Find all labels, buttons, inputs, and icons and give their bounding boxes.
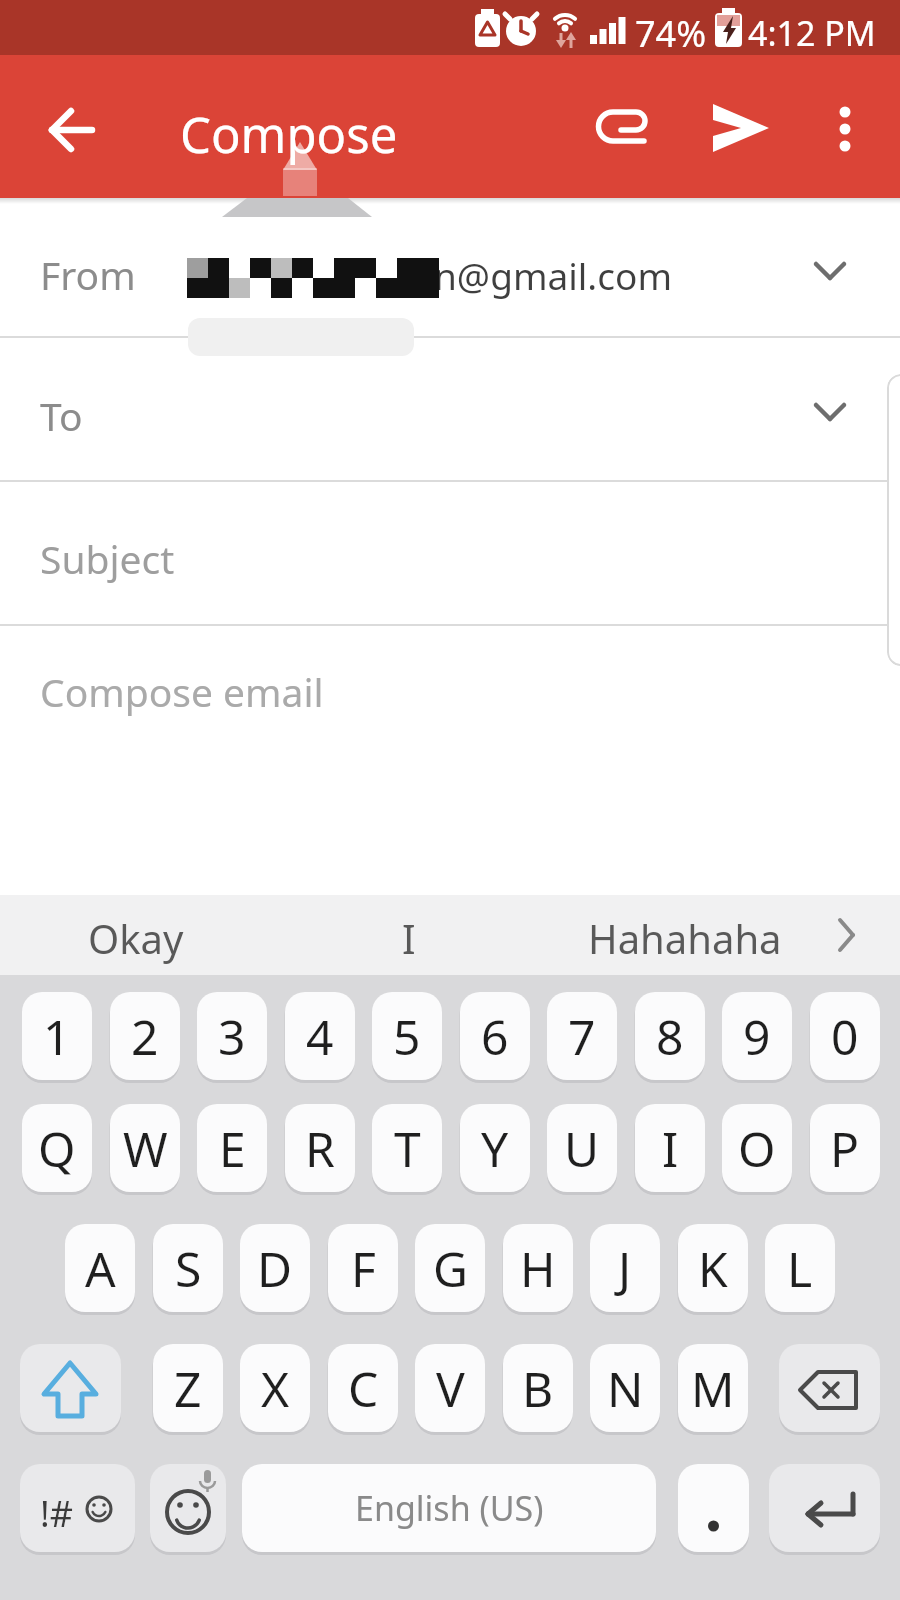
staticText: To [40,389,83,442]
button[interactable]: G [415,1224,485,1312]
button[interactable]: 3 [197,992,267,1080]
staticText: 1 [43,1004,71,1069]
button[interactable] [30,88,114,172]
staticText: C [348,1356,379,1421]
button[interactable]: T [372,1104,442,1192]
staticText: 8 [656,1004,684,1069]
button[interactable]: Y [460,1104,530,1192]
staticText: 4 [306,1004,334,1069]
button[interactable]: E [197,1104,267,1192]
button[interactable]: V [415,1344,485,1432]
button[interactable]: 6 [460,992,530,1080]
button[interactable] [678,1464,749,1552]
staticText: 74% [635,9,707,58]
staticText: J [618,1236,632,1301]
button[interactable] [150,1464,226,1552]
staticText: E [219,1116,246,1181]
button[interactable]: B [503,1344,573,1432]
button[interactable]: R [285,1104,355,1192]
staticText: 3 [218,1004,246,1069]
staticText: 6 [481,1004,509,1069]
button[interactable]: K [678,1224,748,1312]
staticText: 9 [743,1004,771,1069]
staticText: Y [481,1116,509,1181]
button[interactable] [330,895,530,975]
staticText: U [564,1116,600,1181]
button[interactable]: C [328,1344,398,1432]
button[interactable]: 4 [285,992,355,1080]
staticText: 7 [568,1004,596,1069]
staticText: 0 [831,1004,859,1069]
staticText: Okay [88,911,184,965]
staticText: 4:12 PM [748,10,876,56]
staticText: M [691,1356,735,1421]
button[interactable] [0,626,900,894]
staticText: S [175,1236,202,1301]
button[interactable] [0,482,900,625]
button[interactable]: D [240,1224,310,1312]
staticText: English (US) [355,1485,544,1531]
button[interactable]: S [153,1224,223,1312]
staticText: H [520,1236,556,1301]
button[interactable] [779,1344,880,1432]
staticText: B [522,1356,554,1421]
button[interactable] [560,895,810,975]
button[interactable] [820,895,890,975]
staticText: G [433,1236,468,1301]
button[interactable]: L [765,1224,835,1312]
staticText: F [351,1236,376,1301]
button[interactable]: 2 [110,992,180,1080]
button[interactable]: 5 [372,992,442,1080]
staticText: D [257,1236,293,1301]
button[interactable]: M [678,1344,748,1432]
button[interactable] [700,88,780,172]
button[interactable]: J [590,1224,660,1312]
button[interactable]: H [503,1224,573,1312]
button[interactable]: N [590,1344,660,1432]
button[interactable]: X [240,1344,310,1432]
button[interactable]: 9 [722,992,792,1080]
button[interactable] [580,88,660,172]
staticText: Z [174,1356,202,1421]
button[interactable] [20,1464,135,1552]
button[interactable] [769,1464,880,1552]
staticText: K [698,1236,728,1301]
button[interactable]: 1 [22,992,92,1080]
button[interactable]: Z [153,1344,223,1432]
staticText: Compose [180,101,398,168]
button[interactable]: 0 [810,992,880,1080]
staticText: 2 [131,1004,159,1069]
button[interactable]: W [110,1104,180,1192]
staticText: T [394,1116,421,1181]
button[interactable]: P [810,1104,880,1192]
staticText: I [662,1116,679,1181]
button[interactable] [20,895,280,975]
staticText: Q [38,1116,76,1181]
staticText: I [402,911,416,965]
button[interactable]: I [635,1104,705,1192]
staticText: Compose email [40,665,324,718]
button[interactable] [815,88,877,172]
button[interactable]: English (US) [242,1464,656,1552]
staticText: 5 [393,1004,421,1069]
staticText: V [436,1356,465,1421]
button[interactable]: A [65,1224,135,1312]
button[interactable]: F [328,1224,398,1312]
staticText: X [261,1356,290,1421]
staticText: P [830,1116,860,1181]
staticText: From [40,248,136,301]
button[interactable]: 7 [547,992,617,1080]
staticText: L [787,1236,813,1301]
button[interactable]: Q [22,1104,92,1192]
button[interactable] [20,1344,121,1432]
button[interactable] [0,338,900,481]
staticText: W [123,1116,168,1181]
staticText: A [85,1236,116,1301]
button[interactable]: U [547,1104,617,1192]
staticText: O [738,1116,776,1181]
button[interactable]: 8 [635,992,705,1080]
staticText: R [305,1116,335,1181]
button[interactable]: O [722,1104,792,1192]
button[interactable] [0,198,900,337]
staticText: N [607,1356,644,1421]
